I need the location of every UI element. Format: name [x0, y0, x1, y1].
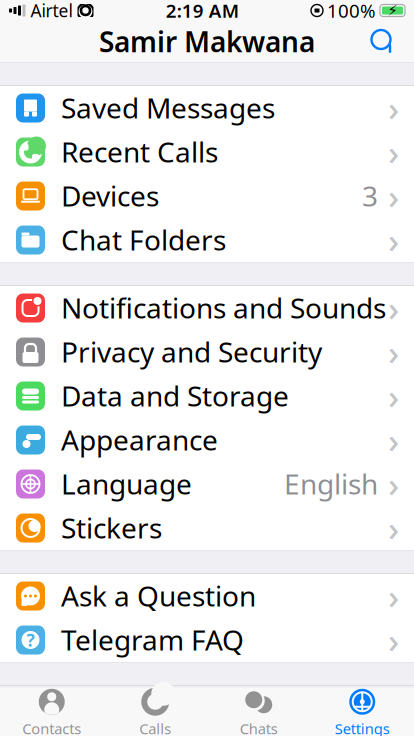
staticText: Calls	[139, 719, 171, 736]
staticText: Chat Folders	[61, 221, 226, 258]
staticText: ›	[388, 617, 399, 663]
staticText: ›	[388, 573, 399, 619]
staticText: 3	[362, 177, 378, 214]
button[interactable]: Stickers	[0, 506, 414, 550]
button[interactable]: Search	[368, 26, 414, 56]
button[interactable]: Calls	[103, 682, 207, 736]
staticText: Chats	[240, 719, 278, 736]
staticText: Recent Calls	[61, 133, 218, 170]
staticText: ›	[388, 373, 399, 419]
staticText: 2:19 AM	[166, 0, 239, 23]
staticText: ›	[388, 285, 399, 331]
staticText: ›	[388, 461, 399, 507]
button[interactable]: Saved Messages	[0, 86, 414, 130]
staticText: Privacy and Security	[61, 333, 322, 370]
staticText: Airtel	[30, 0, 72, 22]
staticText: ›	[388, 217, 399, 263]
button[interactable]: Contacts	[0, 682, 103, 736]
button[interactable]: ?	[0, 618, 414, 662]
button[interactable]: Chats	[207, 682, 310, 736]
staticText: ›	[388, 417, 399, 463]
staticText: ›	[388, 129, 399, 175]
staticText: Settings	[335, 719, 390, 736]
staticText: Devices	[61, 177, 159, 214]
staticText: Data and Storage	[61, 377, 289, 414]
staticText: ⚡︎	[387, 2, 397, 19]
staticText: Language	[61, 465, 192, 502]
button[interactable]: Settings	[310, 682, 414, 736]
button[interactable]: Notifications and Sounds	[0, 286, 414, 330]
staticText: Stickers	[61, 509, 162, 546]
staticText: Saved Messages	[61, 89, 275, 126]
staticText: Appearance	[61, 421, 218, 458]
button[interactable]: Ask a Question	[0, 574, 414, 618]
staticText: ›	[388, 329, 399, 375]
button[interactable]: Chat Folders	[0, 218, 414, 262]
staticText: Ask a Question	[61, 577, 256, 614]
button[interactable]: Devices	[0, 174, 414, 218]
staticText: Samir Makwana	[99, 23, 315, 60]
staticText: Telegram FAQ	[61, 621, 244, 658]
button[interactable]: Language	[0, 462, 414, 506]
button[interactable]: Privacy and Security	[0, 330, 414, 374]
staticText: ›	[388, 505, 399, 551]
button[interactable]: Recent Calls	[0, 130, 414, 174]
staticText: Contacts	[22, 719, 81, 736]
staticText: Notifications and Sounds	[61, 289, 386, 326]
button[interactable]: Appearance	[0, 418, 414, 462]
staticText: ›	[388, 173, 399, 219]
staticText: 100%	[327, 0, 376, 23]
staticText: ?	[26, 628, 34, 651]
staticText: English	[284, 465, 378, 502]
button[interactable]: Data and Storage	[0, 374, 414, 418]
staticText: ›	[388, 85, 399, 131]
